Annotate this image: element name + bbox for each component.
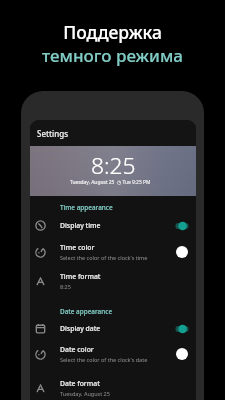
button[interactable]: Date color [30, 342, 196, 366]
button[interactable]: Date appearance [30, 307, 196, 319]
staticText: Select the color of the clock's time [60, 254, 148, 261]
button[interactable]: Pick colour [174, 346, 190, 362]
staticText: Select the color of the clock's date [60, 356, 148, 363]
staticText: Time format [60, 272, 101, 281]
button[interactable]: Time format [30, 269, 196, 293]
button[interactable]: Display time [30, 217, 196, 234]
staticText: темного режима [42, 44, 183, 67]
staticText: Tuesday, August 25 ◷ Tue 9:25 PM [70, 179, 151, 186]
staticText: Tuesday, August 25 [60, 390, 110, 397]
staticText: Date color [60, 345, 94, 354]
staticText: Settings [37, 128, 69, 139]
staticText: Display date [60, 324, 101, 333]
staticText: Поддержка [63, 20, 162, 44]
button[interactable]: Pick colour [174, 244, 190, 260]
button[interactable]: Time appearance [30, 203, 196, 215]
staticText: Time color [60, 243, 95, 252]
staticText: Date appearance [60, 307, 113, 316]
staticText: 8:25 [60, 283, 71, 290]
button[interactable]: Date format [30, 376, 196, 400]
staticText: 8:25 [91, 150, 136, 181]
button[interactable]: Display date [30, 320, 196, 337]
staticText: Time appearance [60, 203, 113, 212]
button[interactable]: Time color [30, 240, 196, 264]
button[interactable]: Toggle [174, 322, 190, 336]
staticText: Display time [60, 221, 101, 230]
staticText: Date format [60, 379, 100, 388]
button[interactable]: Toggle [174, 219, 190, 233]
